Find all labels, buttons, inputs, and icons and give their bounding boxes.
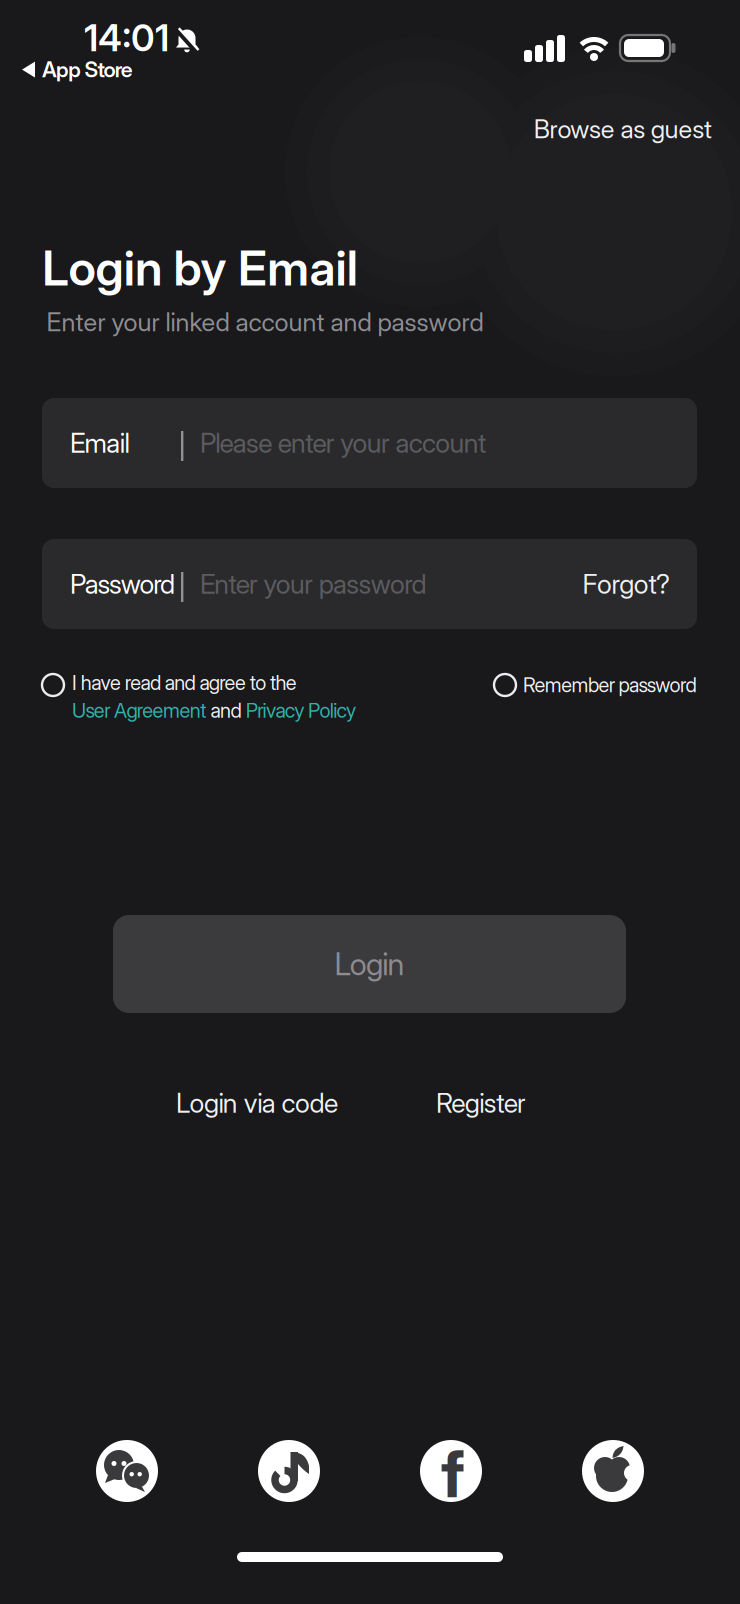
staticText: Browse as guest bbox=[534, 114, 712, 144]
staticText: Please enter your account bbox=[200, 427, 486, 459]
staticText: and bbox=[206, 699, 246, 722]
staticText: App Store bbox=[42, 57, 133, 82]
staticText: Email bbox=[70, 427, 129, 459]
staticText: Remember password bbox=[523, 673, 696, 697]
staticText: Privacy Policy bbox=[246, 699, 356, 722]
staticText: User Agreement bbox=[72, 699, 206, 722]
staticText: Login bbox=[335, 946, 404, 982]
staticText: Enter your password bbox=[200, 568, 426, 600]
staticText: Enter your linked account and password bbox=[46, 307, 483, 337]
staticText: I have read and agree to the bbox=[72, 671, 297, 695]
staticText: Login by Email bbox=[42, 240, 358, 296]
staticText: Password bbox=[70, 568, 175, 600]
staticText: Login via code bbox=[176, 1087, 338, 1119]
staticText: Register bbox=[436, 1087, 526, 1119]
staticText: 14:01 bbox=[84, 16, 169, 60]
staticText: Forgot? bbox=[582, 568, 670, 600]
staticText: f bbox=[441, 1435, 465, 1513]
